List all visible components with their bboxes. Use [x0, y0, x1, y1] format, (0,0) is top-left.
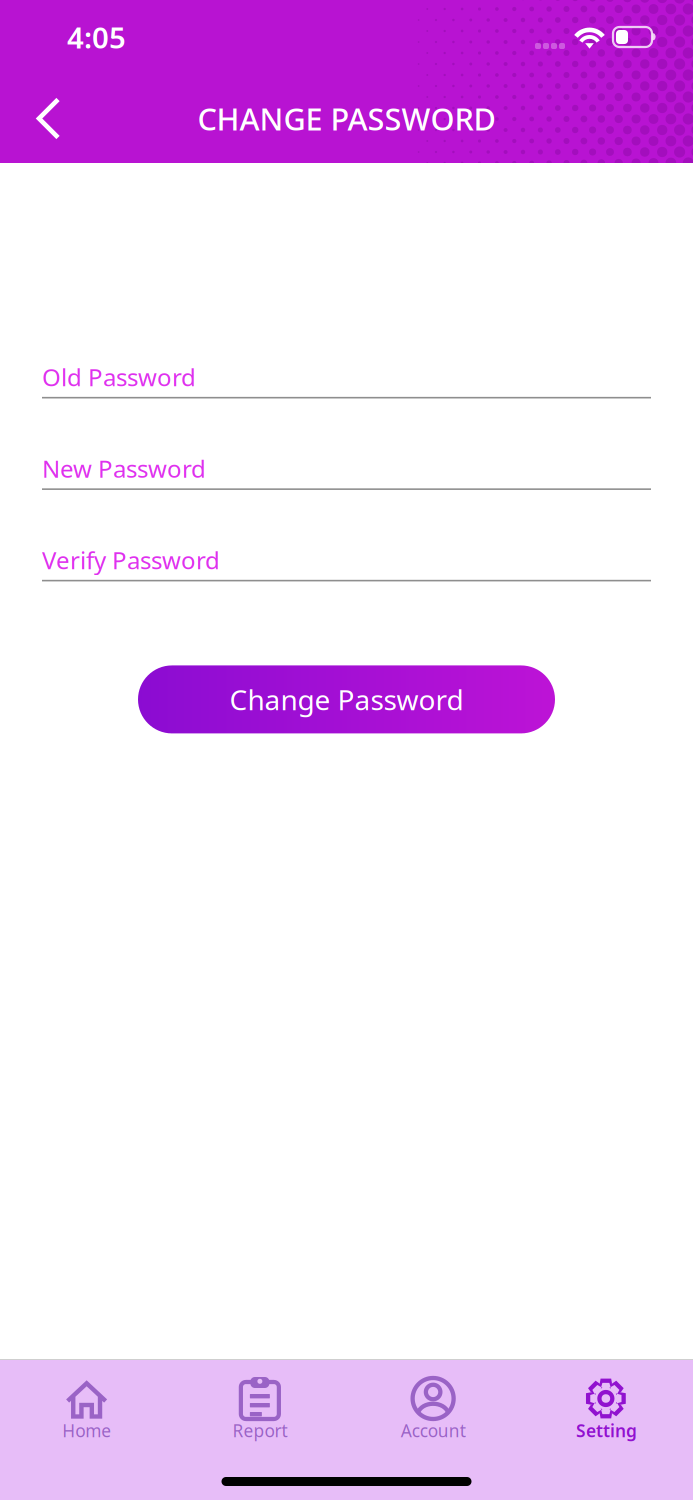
button[interactable]: Change Password — [138, 665, 555, 733]
staticText: New Password — [42, 452, 206, 484]
staticText: Verify Password — [42, 544, 220, 576]
staticText: Change Password — [229, 681, 463, 718]
staticText: CHANGE PASSWORD — [197, 98, 495, 139]
staticText: Old Password — [42, 361, 196, 393]
button[interactable]: Home — [0, 1375, 173, 1442]
staticText: Setting — [576, 1419, 637, 1442]
button[interactable]: Setting — [520, 1375, 693, 1442]
staticText: 4:05 — [67, 17, 126, 56]
button[interactable]: Back — [0, 84, 79, 152]
staticText: Account — [401, 1419, 466, 1442]
button[interactable]: Account — [346, 1375, 520, 1442]
staticText: Report — [232, 1419, 287, 1442]
button[interactable]: Report — [173, 1375, 346, 1442]
staticText: Home — [62, 1419, 111, 1442]
